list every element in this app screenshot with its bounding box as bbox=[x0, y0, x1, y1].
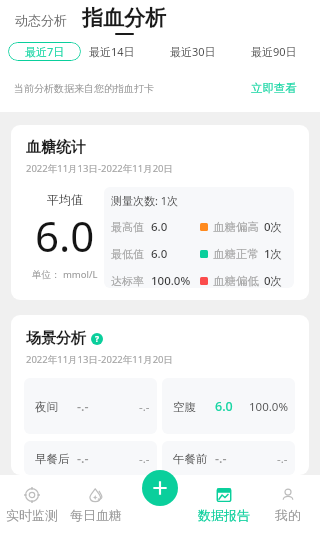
button[interactable]: 添加记录 bbox=[142, 470, 178, 506]
staticText: -.- bbox=[277, 451, 288, 467]
staticText: 6.0 bbox=[151, 219, 168, 235]
button[interactable]: 说明 bbox=[91, 333, 103, 345]
button[interactable]: 空腹 bbox=[162, 378, 295, 434]
staticText: 1次 bbox=[264, 246, 283, 262]
button[interactable]: 每日血糖 bbox=[64, 475, 128, 549]
staticText: 指血分析 bbox=[82, 5, 166, 31]
staticText: 最近30日 bbox=[170, 44, 216, 59]
staticText: 测量次数: 1次 bbox=[111, 193, 179, 208]
staticText: ? bbox=[95, 333, 100, 345]
staticText: -.- bbox=[77, 398, 89, 415]
staticText: 2022年11月13日-2022年11月20日 bbox=[26, 353, 174, 366]
staticText: 最近90日 bbox=[251, 44, 297, 59]
staticText: 最低值 bbox=[111, 247, 144, 261]
staticText: 每日血糖 bbox=[70, 507, 122, 523]
staticText: 2022年11月13日-2022年11月20日 bbox=[26, 162, 174, 175]
staticText: 6.0 bbox=[35, 207, 95, 264]
staticText: 最近7日 bbox=[25, 44, 65, 59]
staticText: 6.0 bbox=[151, 246, 168, 262]
button[interactable]: 最近90日 bbox=[245, 42, 303, 61]
staticText: 夜间 bbox=[35, 400, 58, 414]
staticText: 血糖统计 bbox=[26, 138, 86, 157]
staticText: 单位： mmol/L bbox=[32, 268, 98, 281]
staticText: 午餐前 bbox=[173, 452, 208, 466]
staticText: -.- bbox=[215, 450, 227, 467]
staticText: 平均值 bbox=[47, 192, 83, 207]
staticText: 6.0 bbox=[215, 398, 233, 415]
staticText: 场景分析 bbox=[26, 329, 86, 348]
staticText: 最近14日 bbox=[89, 44, 135, 59]
staticText: 血糖偏高 bbox=[213, 220, 259, 234]
button[interactable]: 最近30日 bbox=[164, 42, 222, 61]
staticText: 动态分析 bbox=[15, 12, 67, 28]
staticText: 立即查看 bbox=[251, 81, 297, 95]
staticText: 血糖偏低 bbox=[213, 274, 259, 288]
button[interactable]: 最近14日 bbox=[83, 42, 141, 61]
staticText: -.- bbox=[77, 450, 89, 467]
button[interactable]: 动态分析 bbox=[15, 12, 67, 28]
button[interactable]: 数据报告 bbox=[192, 475, 256, 549]
staticText: 达标率 bbox=[111, 274, 144, 288]
button[interactable]: 午餐前 bbox=[162, 441, 295, 475]
staticText: -.- bbox=[139, 451, 150, 467]
staticText: -.- bbox=[139, 399, 150, 415]
staticText: 100.0% bbox=[249, 399, 288, 415]
button[interactable]: 夜间 bbox=[24, 378, 157, 434]
button[interactable]: 我的 bbox=[256, 475, 320, 549]
staticText: 空腹 bbox=[173, 400, 196, 414]
staticText: 100.0% bbox=[151, 273, 191, 288]
staticText: 血糖正常 bbox=[213, 247, 259, 261]
button[interactable]: 指血分析 bbox=[82, 5, 166, 35]
staticText: 0次 bbox=[264, 219, 283, 235]
staticText: 实时监测 bbox=[6, 507, 58, 523]
staticText: 早餐后 bbox=[35, 452, 70, 466]
staticText: 数据报告 bbox=[198, 507, 250, 523]
button[interactable]: 实时监测 bbox=[0, 475, 64, 549]
staticText: 0次 bbox=[264, 273, 283, 288]
staticText: 当前分析数据来自您的指血打卡 bbox=[14, 82, 154, 95]
staticText: 最高值 bbox=[111, 220, 144, 234]
staticText: 我的 bbox=[275, 507, 301, 523]
button[interactable]: 早餐后 bbox=[24, 441, 157, 475]
button[interactable]: 立即查看 bbox=[251, 81, 297, 95]
button[interactable]: 最近7日 bbox=[8, 42, 81, 61]
